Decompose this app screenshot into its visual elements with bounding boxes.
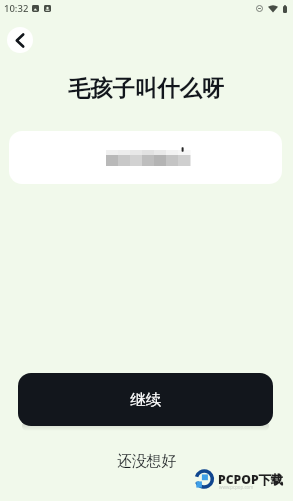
- button[interactable]: 继续: [18, 373, 273, 426]
- button[interactable]: [9, 131, 282, 184]
- staticText: www.pcpop.com: [219, 484, 254, 490]
- button[interactable]: Back: [7, 27, 33, 53]
- staticText: 10:32: [4, 2, 29, 15]
- staticText: 还没想好: [117, 452, 177, 471]
- button[interactable]: 还没想好: [103, 446, 191, 477]
- staticText: 继续: [130, 390, 161, 410]
- staticText: PCPOP下载: [218, 471, 284, 488]
- staticText: 毛孩子叫什么呀: [68, 75, 225, 103]
